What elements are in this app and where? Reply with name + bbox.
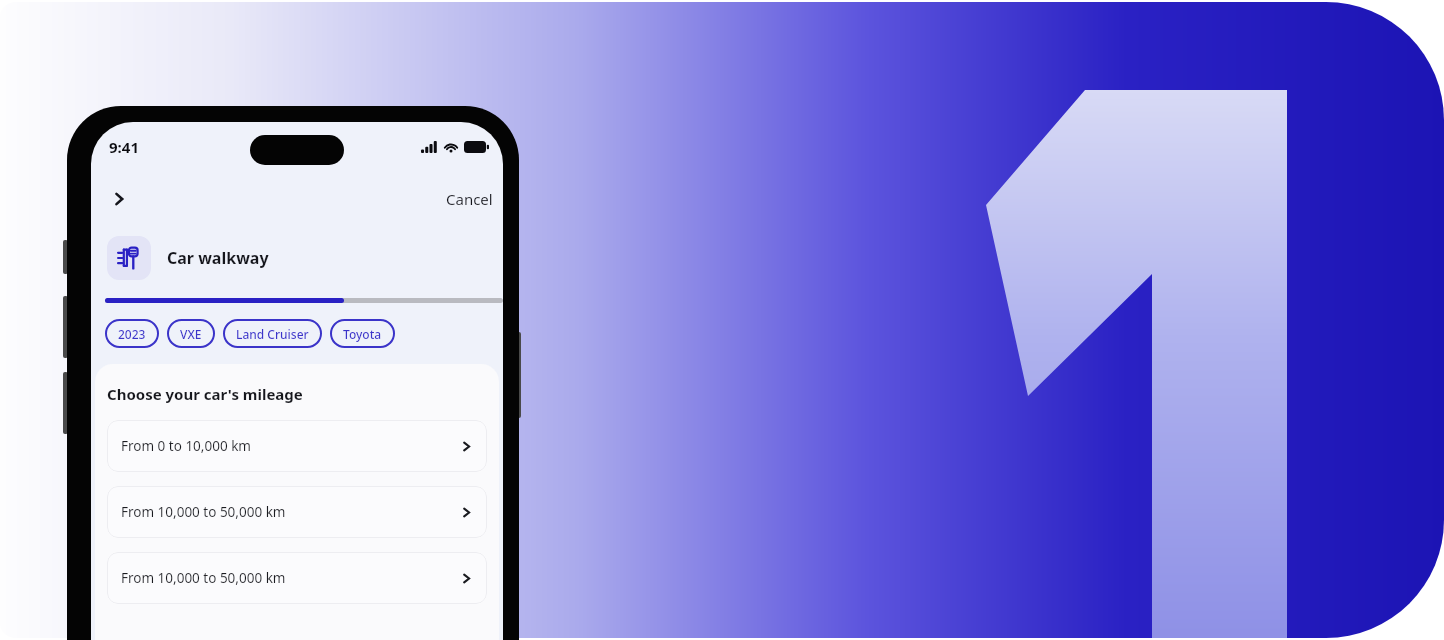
staticText: Land Cruiser	[236, 326, 309, 342]
button[interactable]: From 10,000 to 50,000 km	[107, 486, 487, 538]
button[interactable]: Cancel	[436, 189, 503, 209]
button[interactable]: From 0 to 10,000 km	[107, 420, 487, 472]
button[interactable]: VXE	[167, 319, 215, 348]
staticText: From 10,000 to 50,000 km	[121, 569, 286, 587]
staticText: Car walkway	[167, 247, 269, 269]
staticText: Toyota	[343, 326, 382, 342]
button[interactable]: Back	[101, 181, 137, 217]
staticText: 2023	[118, 326, 146, 342]
button[interactable]: Toyota	[330, 319, 395, 348]
staticText: 9:41	[109, 137, 139, 157]
staticText: Choose your car's mileage	[107, 384, 303, 404]
button[interactable]: Land Cruiser	[223, 319, 322, 348]
button[interactable]: From 10,000 to 50,000 km	[107, 552, 487, 604]
staticText: Cancel	[446, 189, 493, 209]
button[interactable]: 2023	[105, 319, 159, 348]
staticText: VXE	[180, 326, 202, 342]
staticText: From 10,000 to 50,000 km	[121, 503, 286, 521]
staticText: From 0 to 10,000 km	[121, 437, 251, 455]
